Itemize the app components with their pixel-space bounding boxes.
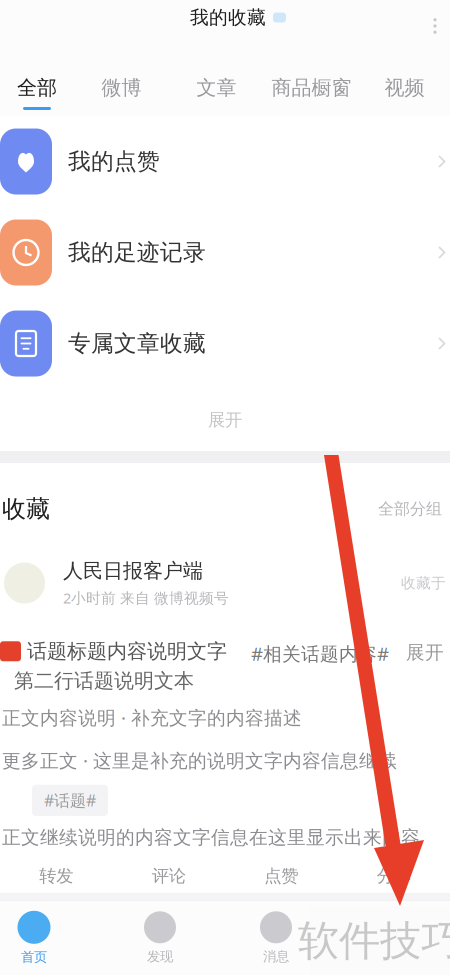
button[interactable]: 点赞 — [225, 859, 337, 893]
staticText: 全部 — [17, 75, 57, 100]
staticText: 2小时前 来自 微博视频号 — [63, 588, 229, 607]
button[interactable]: 转发 — [0, 859, 112, 893]
staticText: 分享 — [377, 865, 411, 886]
button[interactable]: 微博 — [74, 52, 169, 116]
button[interactable]: 视频 — [359, 52, 450, 116]
button[interactable]: 收藏于 — [401, 574, 450, 592]
staticText: 商品橱窗 — [271, 75, 351, 100]
staticText: 展开 — [208, 409, 242, 431]
staticText: 软件技巧 — [298, 916, 450, 966]
staticText: 评论 — [152, 865, 186, 886]
staticText: 正文内容说明 · 补充文字的内容描述 — [2, 705, 302, 730]
staticText: 展开 — [406, 641, 444, 664]
button[interactable]: 文章 — [169, 52, 264, 116]
staticText: 点赞 — [264, 865, 298, 886]
button[interactable]: 分享 — [337, 859, 450, 893]
staticText: 我 — [386, 948, 399, 965]
staticText: 正文继续说明的内容文字信息在这里显示出来内容 — [2, 826, 420, 849]
button[interactable]: 全部 — [0, 52, 74, 116]
button[interactable]: 全部分组 — [378, 499, 442, 519]
button[interactable]: 专属文章收藏 — [0, 298, 450, 389]
staticText: 消息 — [263, 948, 289, 965]
button[interactable]: 首页 — [0, 901, 68, 975]
staticText: 话题标题内容说明文字 — [27, 639, 227, 664]
staticText: 我的足迹记录 — [68, 239, 206, 266]
staticText: 全部分组 — [378, 499, 442, 519]
staticText: 首页 — [21, 949, 47, 965]
button[interactable]: 发现 — [68, 901, 252, 975]
staticText: 第二行话题说明文本 — [14, 669, 194, 693]
staticText: 文章 — [196, 75, 236, 100]
button[interactable]: 我的点赞 — [0, 116, 450, 207]
button[interactable]: 展开 — [0, 389, 450, 451]
staticText: 更多正文 · 这里是补充的说明文字内容信息继续 — [2, 748, 397, 773]
button[interactable]: 商品橱窗 — [264, 52, 359, 116]
button[interactable]: #话题# — [32, 785, 108, 816]
button[interactable]: 评论 — [112, 859, 225, 893]
button[interactable]: 我 — [300, 901, 450, 975]
staticText: #话题# — [44, 790, 96, 811]
staticText: 微博 — [101, 75, 141, 100]
staticText: 转发 — [39, 865, 73, 886]
staticText: 发现 — [147, 948, 173, 965]
staticText: 收藏 — [2, 494, 50, 524]
staticText: 人民日报客户端 — [63, 558, 203, 583]
staticText: 我的点赞 — [68, 148, 160, 175]
staticText: 收藏于 — [401, 574, 446, 592]
button[interactable]: 消息 — [252, 901, 300, 975]
staticText: #相关话题内容# — [251, 641, 389, 666]
staticText: 视频 — [384, 75, 424, 100]
staticText: 专属文章收藏 — [68, 330, 206, 357]
button[interactable]: More — [420, 9, 450, 43]
button[interactable]: 我的足迹记录 — [0, 207, 450, 298]
staticText: 我的收藏 — [190, 6, 266, 29]
